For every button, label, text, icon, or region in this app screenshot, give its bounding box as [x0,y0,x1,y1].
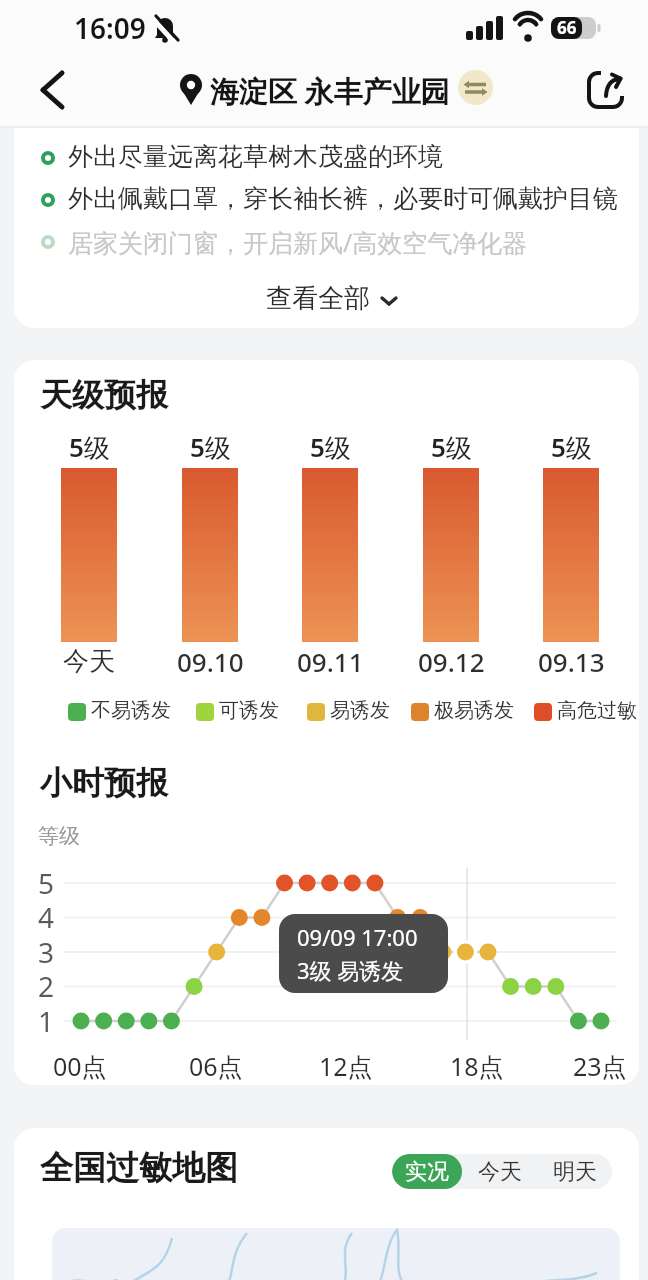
staticText: 今天 [63,645,115,678]
button[interactable] [458,70,493,105]
staticText: 高危过敏 [557,698,637,723]
staticText: 09.11 [297,644,364,679]
button[interactable]: 实况 [392,1154,462,1189]
staticText: 09/09 17:00 [297,922,418,952]
staticText: 4 [38,898,55,936]
staticText: 5级 [69,429,110,465]
staticText: 16:09 [74,9,146,47]
staticText: 23点 [573,1049,627,1083]
staticText: 00点 [53,1049,107,1083]
button[interactable] [38,68,68,112]
button[interactable]: 今天 [462,1154,537,1189]
staticText: 等级 [38,823,80,849]
staticText: 实况 [405,1158,449,1186]
staticText: 2 [38,967,55,1005]
staticText: 09.10 [177,644,244,679]
staticText: 外出佩戴口罩，穿长袖长裤，必要时可佩戴护目镜 [68,183,618,214]
staticText: 小时预报 [40,763,168,803]
staticText: 外出尽量远离花草树木茂盛的环境 [68,141,443,172]
staticText: 5级 [551,429,592,465]
staticText: 3 [38,933,55,971]
button[interactable]: 明天 [537,1154,612,1189]
button[interactable] [586,70,626,110]
staticText: 09.12 [418,644,485,679]
staticText: 5级 [310,429,351,465]
staticText: 可诱发 [219,698,279,723]
button[interactable]: 查看全部 [247,278,407,318]
staticText: 3级 易诱发 [297,955,404,985]
staticText: 极易诱发 [434,698,514,723]
staticText: 06点 [189,1049,243,1083]
staticText: 5级 [190,429,231,465]
staticText: 海淀区 永丰产业园 [210,71,450,111]
staticText: 18点 [450,1049,504,1083]
staticText: 居家关闭门窗，开启新风/高效空气净化器 [68,225,528,259]
staticText: 全国过敏地图 [40,1147,238,1189]
staticText: 1 [38,1002,55,1040]
staticText: 不易诱发 [91,698,171,723]
staticText: 查看全部 [266,282,370,315]
staticText: 12点 [319,1049,373,1083]
staticText: 易诱发 [330,698,390,723]
staticText: 66 [557,16,577,39]
staticText: 天级预报 [40,375,168,415]
staticText: 5级 [431,429,472,465]
staticText: 今天 [478,1158,522,1186]
staticText: 明天 [553,1158,597,1186]
staticText: 5 [38,864,55,902]
staticText: 09.13 [538,644,605,679]
